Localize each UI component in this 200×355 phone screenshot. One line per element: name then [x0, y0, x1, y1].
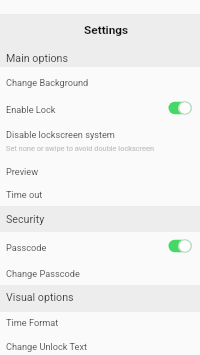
staticText: Security — [6, 213, 45, 226]
staticText: Time Format — [6, 317, 59, 328]
button[interactable]: Toggle setting — [168, 100, 194, 116]
button[interactable]: Time out — [0, 179, 200, 205]
button[interactable]: Time Format — [0, 312, 200, 337]
button[interactable]: Toggle setting — [168, 238, 194, 254]
staticText: Disable lockscreen system — [6, 129, 115, 140]
staticText: Set none or swipe to avoid double locksc… — [6, 144, 155, 153]
button[interactable]: Disable lockscreen system — [0, 119, 200, 156]
button[interactable]: Change Passcode — [0, 260, 200, 286]
staticText: Change Passcode — [6, 268, 80, 279]
button[interactable]: Passcode — [0, 232, 200, 260]
staticText: Time out — [6, 189, 43, 200]
button[interactable]: Enable Lock — [0, 94, 200, 120]
staticText: Change Background — [6, 77, 89, 88]
staticText: Change Unlock Text — [6, 341, 87, 352]
staticText: Enable Lock — [6, 104, 56, 115]
button[interactable]: Change Unlock Text — [0, 337, 200, 355]
staticText: Visual options — [6, 291, 74, 304]
staticText: Preview — [6, 166, 39, 177]
button[interactable]: Change Background — [0, 67, 200, 94]
staticText: Main options — [6, 52, 69, 65]
button[interactable]: Preview — [0, 156, 200, 179]
staticText: Passcode — [6, 242, 47, 253]
staticText: Settings — [84, 23, 129, 37]
button[interactable]: Settings — [0, 14, 200, 40]
